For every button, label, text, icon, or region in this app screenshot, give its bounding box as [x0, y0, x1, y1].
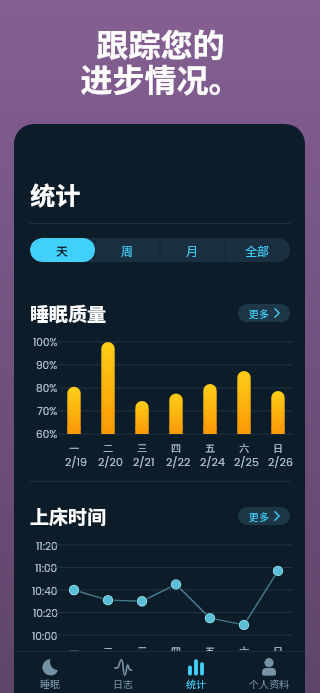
staticText: 个人资料	[249, 676, 289, 689]
staticText: 日	[273, 440, 283, 454]
staticText: 三	[137, 643, 147, 657]
staticText: 70%	[37, 404, 58, 419]
staticText: 一	[69, 643, 79, 657]
button[interactable]: 周	[95, 238, 160, 262]
button[interactable]: Profile	[232, 651, 305, 693]
button[interactable]: Statistics	[159, 651, 232, 693]
staticText: 日志	[113, 676, 133, 689]
staticText: 统计	[186, 676, 206, 689]
staticText: 2/24	[200, 454, 225, 468]
staticText: 100%	[33, 335, 58, 350]
staticText: 二	[103, 643, 113, 657]
staticText: 80%	[36, 381, 58, 396]
staticText: 一	[69, 440, 79, 454]
staticText: 10:00	[32, 629, 58, 644]
button[interactable]: Journal	[86, 651, 159, 693]
staticText: 2/21	[133, 454, 155, 468]
staticText: 11:00	[35, 561, 58, 576]
staticText: 更多	[249, 306, 269, 320]
staticText: 天	[56, 242, 69, 259]
staticText: 月	[186, 242, 199, 259]
staticText: 上床时间	[30, 502, 107, 530]
staticText: 周	[121, 242, 134, 259]
staticText: 10:40	[32, 584, 58, 599]
staticText: 2/19	[65, 454, 88, 468]
staticText: 60%	[36, 427, 58, 442]
staticText: 统计	[30, 176, 81, 212]
staticText: 六	[239, 643, 249, 657]
staticText: 睡眠质量	[30, 299, 107, 327]
button[interactable]: 全部	[225, 238, 290, 262]
staticText: 更多	[249, 509, 269, 523]
staticText: 11:20	[36, 539, 58, 554]
staticText: 四	[171, 440, 181, 454]
staticText: 2/20	[98, 454, 123, 468]
staticText: 全部	[245, 242, 270, 259]
staticText: 2/22	[166, 454, 191, 468]
staticText: 五	[205, 440, 215, 454]
staticText: 跟踪您的 进步情况。	[80, 20, 241, 101]
staticText: 2/25	[234, 454, 259, 468]
staticText: 日	[273, 643, 283, 657]
staticText: 10:20	[33, 606, 58, 621]
button[interactable]: 更多	[238, 507, 290, 525]
button[interactable]: 天	[30, 238, 95, 262]
button[interactable]: Sleep	[14, 651, 86, 693]
staticText: 三	[137, 440, 147, 454]
staticText: 90%	[36, 358, 58, 373]
button[interactable]: 月	[160, 238, 225, 262]
staticText: 五	[205, 643, 215, 657]
staticText: 四	[171, 643, 181, 657]
staticText: 2/26	[268, 454, 293, 468]
staticText: 睡眠	[40, 676, 60, 689]
staticText: 六	[239, 440, 249, 454]
button[interactable]: 更多	[238, 304, 290, 322]
staticText: 二	[103, 440, 113, 454]
